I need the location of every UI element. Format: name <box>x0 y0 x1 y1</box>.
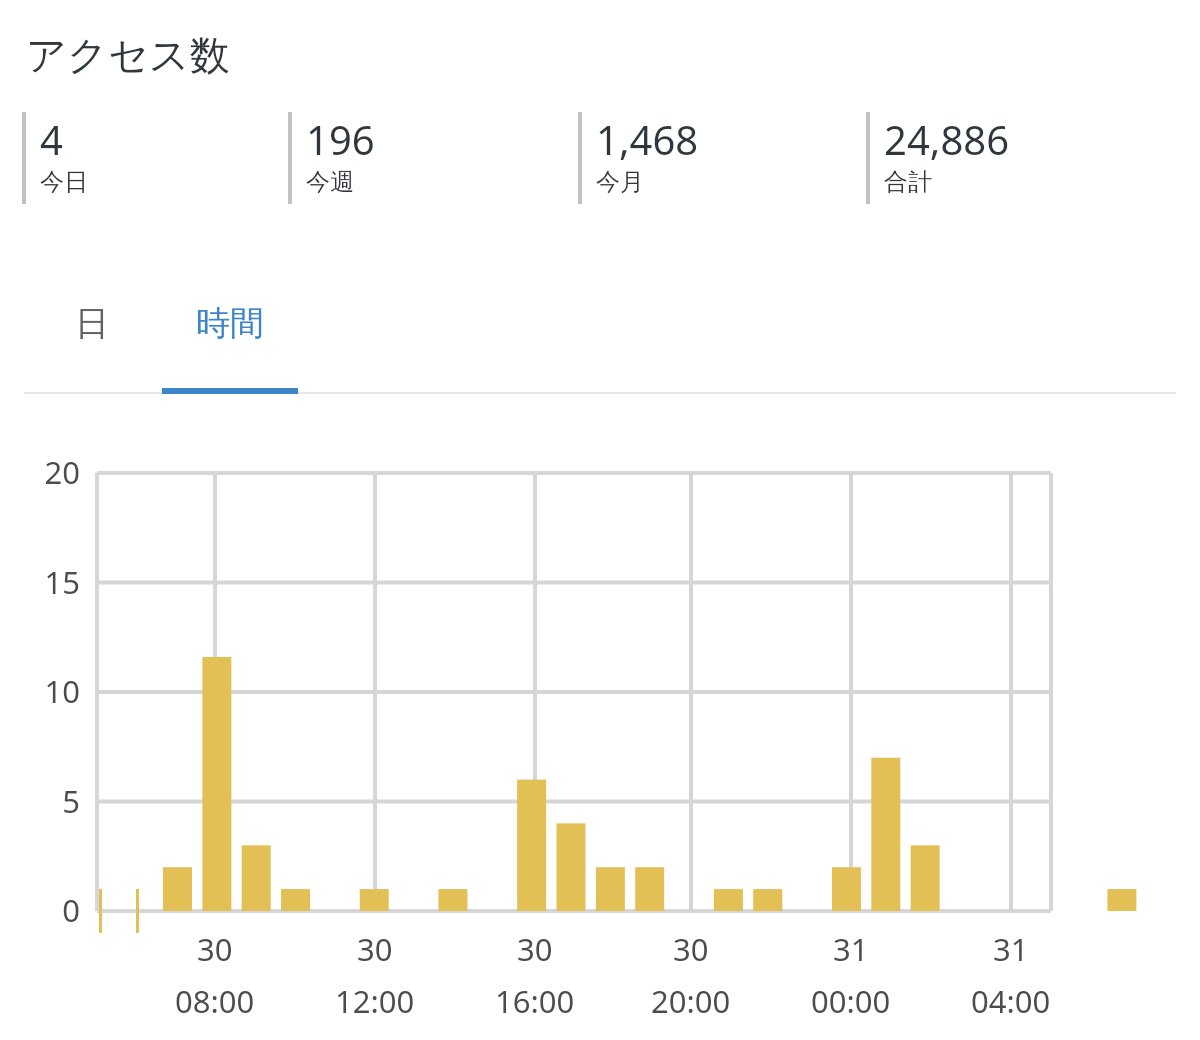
staticText: 4 <box>40 112 63 166</box>
staticText: 30 <box>673 928 709 970</box>
staticText: 今日 <box>40 167 88 197</box>
staticText: 合計 <box>884 167 932 197</box>
staticText: 今週 <box>306 167 354 197</box>
staticText: 5 <box>18 780 80 822</box>
staticText: 12:00 <box>335 980 415 1022</box>
staticText: 20:00 <box>651 980 731 1022</box>
staticText: 0 <box>18 889 80 931</box>
staticText: 04:00 <box>971 980 1051 1022</box>
staticText: 08:00 <box>175 980 255 1022</box>
staticText: 24,886 <box>884 112 1010 166</box>
staticText: 20 <box>18 451 80 493</box>
staticText: 16:00 <box>495 980 575 1022</box>
staticText: 31 <box>833 928 869 970</box>
staticText: 30 <box>357 928 393 970</box>
staticText: アクセス数 <box>26 30 230 80</box>
staticText: 時間 <box>196 302 264 345</box>
staticText: 今月 <box>596 167 644 197</box>
staticText: 30 <box>197 928 233 970</box>
staticText: 15 <box>18 561 80 603</box>
button[interactable]: 時間 <box>162 292 298 394</box>
staticText: 1,468 <box>596 112 699 166</box>
button[interactable]: 日 <box>22 292 162 394</box>
staticText: 10 <box>18 670 80 712</box>
staticText: 00:00 <box>811 980 891 1022</box>
staticText: 196 <box>306 112 375 166</box>
staticText: 30 <box>517 928 553 970</box>
staticText: 日 <box>75 302 109 345</box>
staticText: 31 <box>993 928 1029 970</box>
